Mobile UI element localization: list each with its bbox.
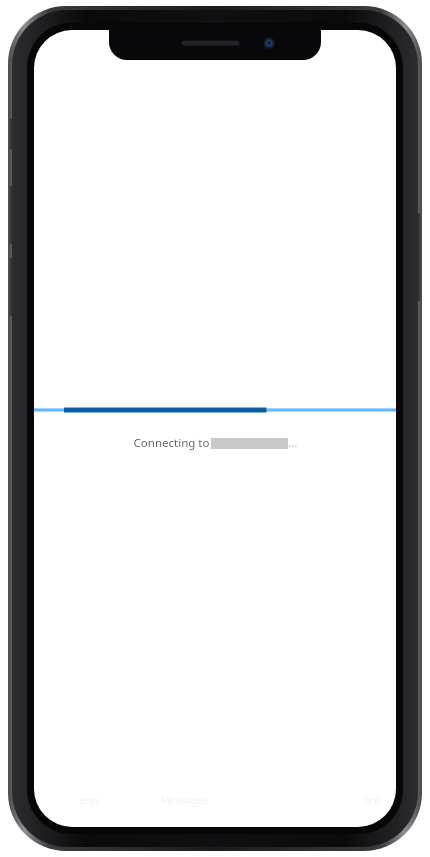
staticText: Messages <box>161 793 208 807</box>
button[interactable]: Documents tab <box>34 791 144 827</box>
staticText: Connecting to <box>132 435 211 451</box>
button[interactable]: More tab <box>347 791 396 827</box>
staticText: ... <box>288 435 298 451</box>
staticText: ore <box>364 793 380 807</box>
staticText: ents <box>79 793 100 807</box>
